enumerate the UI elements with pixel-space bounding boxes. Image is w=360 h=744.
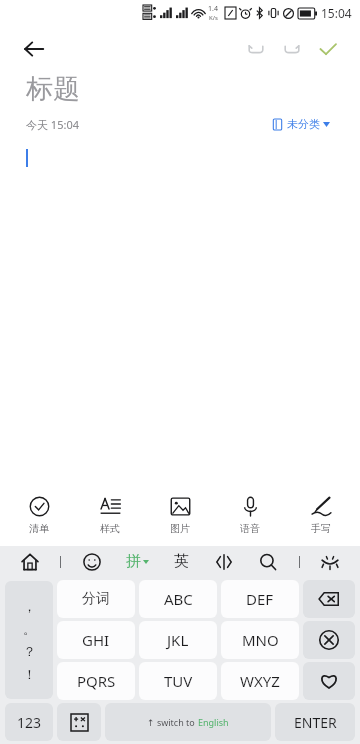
staticText: 标题	[26, 72, 80, 106]
staticText: WXYZ	[240, 671, 280, 691]
button[interactable]: WXYZ	[221, 662, 299, 700]
staticText: DEF	[246, 589, 274, 609]
button[interactable]: 拼	[122, 549, 153, 574]
button[interactable]: 清单	[8, 492, 70, 539]
button[interactable]: ↑ switch to	[105, 703, 271, 741]
staticText: TUV	[164, 671, 193, 691]
staticText: ↑ switch to	[147, 716, 198, 728]
staticText: 1.4	[208, 4, 218, 14]
staticText: 分词	[82, 590, 110, 608]
staticText: 。	[23, 621, 36, 637]
staticText: 123	[17, 713, 42, 732]
button[interactable]: 手写	[290, 492, 352, 539]
button[interactable]: 语音	[219, 492, 281, 539]
staticText: GHI	[82, 630, 110, 650]
button[interactable]: MNO	[221, 621, 299, 659]
staticText: 今天 15:04	[26, 117, 79, 132]
staticText: K/s	[209, 14, 218, 22]
button[interactable]: Home	[16, 548, 44, 576]
button[interactable]: Search	[254, 548, 282, 576]
button[interactable]: 分词	[57, 580, 135, 618]
button[interactable]: TUV	[139, 662, 217, 700]
staticText: 未分类	[287, 117, 320, 131]
staticText: 图片	[170, 522, 190, 535]
button[interactable]: GHI	[57, 621, 135, 659]
button[interactable]: 未分类	[268, 113, 334, 135]
button[interactable]: Symbols	[57, 703, 101, 741]
staticText: 手写	[311, 522, 331, 535]
button[interactable]: HEART	[303, 662, 355, 700]
staticText: 拼	[126, 552, 141, 571]
staticText: 清单	[29, 522, 49, 535]
button[interactable]: ABC	[139, 580, 217, 618]
button[interactable]: Emoji	[78, 548, 106, 576]
staticText: ，	[23, 598, 36, 614]
staticText: 英	[174, 552, 189, 571]
button[interactable]: PQRS	[57, 662, 135, 700]
staticText: ENTER	[294, 713, 337, 732]
button[interactable]: 样式	[79, 492, 141, 539]
button[interactable]: Layout	[210, 548, 238, 576]
staticText: MNO	[242, 630, 279, 650]
staticText: 样式	[100, 522, 120, 535]
button[interactable]: JKL	[139, 621, 217, 659]
staticText: 语音	[240, 522, 260, 535]
button[interactable]: DEF	[221, 580, 299, 618]
staticText: ！	[23, 666, 36, 682]
button[interactable]: 123	[5, 703, 53, 741]
staticText: ？	[23, 643, 36, 659]
button[interactable]: 英	[169, 549, 194, 574]
button[interactable]: Redo	[274, 31, 310, 67]
staticText: PQRS	[77, 671, 116, 691]
button[interactable]: CLEAR	[303, 621, 355, 659]
button[interactable]: Hide keyboard	[316, 548, 344, 576]
staticText: ABC	[164, 589, 193, 609]
button[interactable]: Done	[310, 31, 346, 67]
staticText: JKL	[167, 630, 189, 650]
staticText: 15:04	[321, 5, 352, 21]
button[interactable]: ，	[5, 581, 53, 699]
button[interactable]: 图片	[149, 492, 211, 539]
button[interactable]: Back	[14, 29, 54, 69]
button[interactable]: ENTER	[275, 703, 355, 741]
button[interactable]: BACKSPACE	[303, 580, 355, 618]
staticText: English	[198, 716, 229, 728]
button[interactable]: Undo	[238, 31, 274, 67]
